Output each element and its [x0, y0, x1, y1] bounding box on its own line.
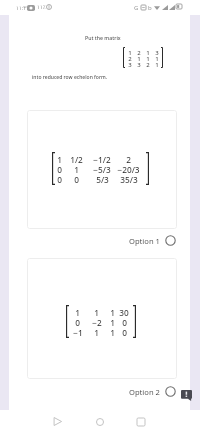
staticText: into reduced row echelon form.: [32, 74, 108, 81]
staticText: ۱۱٪: [37, 4, 46, 10]
button[interactable]: Recent apps: [131, 410, 151, 433]
button[interactable]: Home: [90, 410, 110, 433]
staticText: 30: [119, 307, 129, 317]
staticText: −5/3: [93, 164, 111, 174]
button[interactable]: Back: [47, 410, 67, 433]
button[interactable]: Option 1: [129, 235, 176, 246]
staticText: 2: [137, 49, 141, 55]
staticText: 1: [155, 61, 159, 67]
staticText: Option 2: [129, 387, 160, 397]
staticText: 0: [57, 174, 62, 184]
staticText: 1: [94, 327, 99, 337]
staticText: ۱۱:۴۷: [16, 4, 30, 11]
staticText: G: [134, 4, 139, 12]
button[interactable]: 1: [27, 110, 177, 229]
staticText: 1: [155, 55, 159, 61]
staticText: 3: [137, 61, 141, 67]
staticText: 1: [146, 49, 150, 55]
staticText: 1/2: [70, 154, 83, 164]
staticText: Option 1: [129, 236, 160, 246]
staticText: 35/3: [120, 174, 138, 184]
staticText: 1: [128, 49, 132, 55]
button[interactable]: Option 2: [129, 386, 176, 397]
staticText: 1: [110, 327, 115, 337]
staticText: b: [148, 4, 152, 12]
staticText: −1: [73, 327, 83, 337]
staticText: 3: [128, 61, 132, 67]
staticText: 1: [146, 55, 150, 61]
staticText: 5/3: [96, 174, 109, 184]
button[interactable]: Feedback: [181, 390, 192, 401]
staticText: 1: [74, 164, 79, 174]
staticText: 1: [94, 307, 99, 317]
staticText: −1/2: [93, 154, 111, 164]
staticText: 1: [57, 154, 62, 164]
staticText: −2: [92, 317, 102, 327]
staticText: Put the matrix: [85, 34, 121, 41]
staticText: 1: [110, 317, 115, 327]
staticText: 0: [122, 317, 127, 327]
staticText: 2: [146, 61, 150, 67]
staticText: 0: [75, 317, 80, 327]
staticText: −20/3: [117, 164, 140, 174]
staticText: 1: [110, 307, 115, 317]
staticText: 0: [122, 327, 127, 337]
staticText: 2: [128, 55, 132, 61]
staticText: 3: [155, 49, 159, 55]
staticText: 1: [137, 55, 141, 61]
button[interactable]: 1: [27, 258, 177, 379]
staticText: 2: [126, 154, 131, 164]
staticText: 0: [74, 174, 79, 184]
staticText: 0: [57, 164, 62, 174]
staticText: 1: [75, 307, 80, 317]
